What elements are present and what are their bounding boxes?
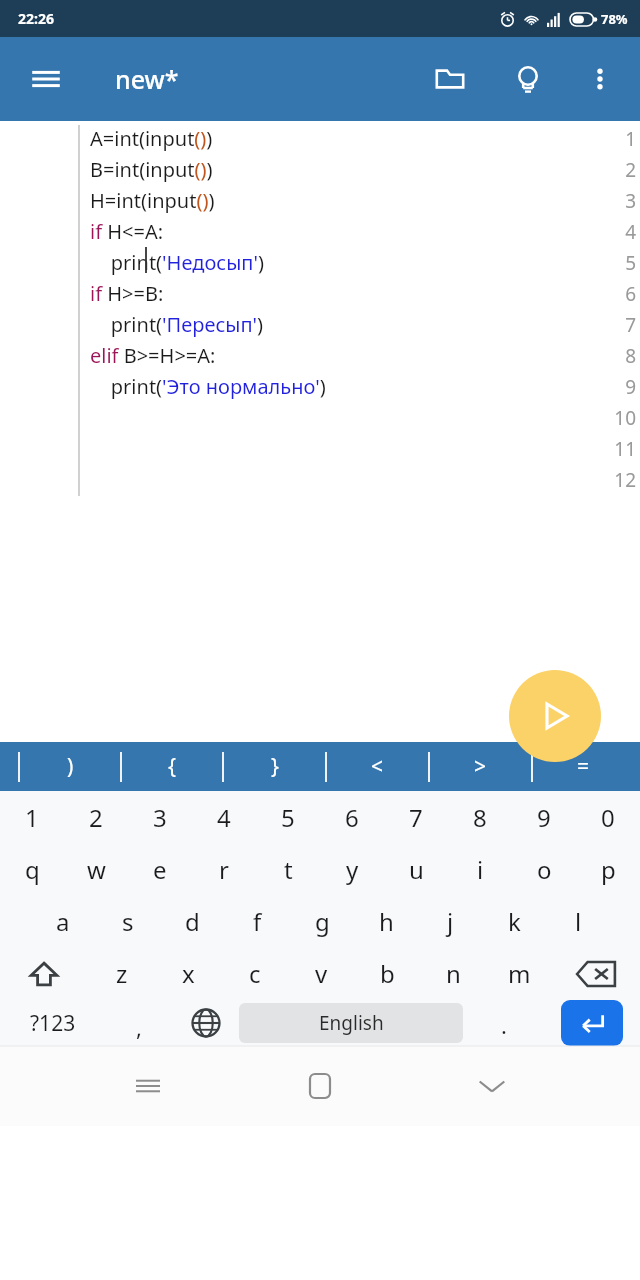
button[interactable]: 3 xyxy=(128,791,192,843)
button[interactable]: More options xyxy=(574,53,626,105)
staticText: k xyxy=(508,905,521,938)
staticText: . xyxy=(501,1010,507,1040)
staticText: b xyxy=(380,957,395,990)
staticText: elif B>=H>=A: xyxy=(90,342,216,369)
button[interactable]: 9 xyxy=(512,791,576,843)
staticText: ) xyxy=(67,752,74,781)
staticText: n xyxy=(446,957,461,990)
staticText: 7 xyxy=(409,801,423,834)
button[interactable]: > xyxy=(430,742,531,791)
button[interactable]: Shift xyxy=(0,947,88,1000)
button[interactable]: q xyxy=(0,843,64,895)
button[interactable]: 0 xyxy=(576,791,640,843)
button[interactable]: English xyxy=(239,1003,463,1043)
staticText: print('Пересып') xyxy=(90,311,264,338)
button[interactable]: { xyxy=(122,742,222,791)
staticText: print('Недосып') xyxy=(90,249,264,276)
staticText: t xyxy=(284,853,293,886)
button[interactable]: 1 xyxy=(0,121,640,742)
button[interactable]: h xyxy=(354,895,418,947)
button[interactable]: 4 xyxy=(192,791,256,843)
staticText: < xyxy=(371,752,384,781)
button[interactable]: e xyxy=(128,843,192,895)
button[interactable]: x xyxy=(155,947,222,1000)
staticText: l xyxy=(575,905,582,938)
staticText: q xyxy=(25,853,40,886)
button[interactable]: f xyxy=(225,895,290,947)
button[interactable]: y xyxy=(320,843,384,895)
button[interactable]: r xyxy=(192,843,256,895)
button[interactable]: n xyxy=(420,947,486,1000)
button[interactable]: Open file xyxy=(422,51,478,107)
button[interactable]: 5 xyxy=(256,791,320,843)
button[interactable]: u xyxy=(384,843,448,895)
button[interactable]: o xyxy=(512,843,576,895)
button[interactable]: b xyxy=(354,947,420,1000)
button[interactable]: Enter xyxy=(561,1000,623,1046)
staticText: 7 xyxy=(568,312,636,338)
button[interactable]: s xyxy=(95,895,160,947)
button[interactable]: 2 xyxy=(64,791,128,843)
staticText: 5 xyxy=(281,801,295,834)
staticText: u xyxy=(409,853,424,886)
button[interactable]: Run xyxy=(509,670,601,762)
button[interactable]: t xyxy=(256,843,320,895)
button[interactable]: z xyxy=(88,947,155,1000)
button[interactable]: , xyxy=(105,1000,173,1046)
button[interactable]: . xyxy=(463,1000,544,1046)
button[interactable]: 1 xyxy=(0,791,64,843)
staticText: 3 xyxy=(153,801,167,834)
button[interactable]: d xyxy=(160,895,225,947)
staticText: 2 xyxy=(568,157,636,183)
button[interactable]: a xyxy=(30,895,95,947)
staticText: o xyxy=(537,853,552,886)
staticText: x xyxy=(182,957,195,990)
button[interactable]: 6 xyxy=(320,791,384,843)
button[interactable]: < xyxy=(327,742,428,791)
button[interactable]: Backspace xyxy=(552,947,640,1000)
staticText: 6 xyxy=(345,801,359,834)
button[interactable]: Home xyxy=(292,1058,348,1114)
staticText: if H<=A: xyxy=(90,218,164,245)
button[interactable]: 7 xyxy=(384,791,448,843)
staticText: c xyxy=(249,957,261,990)
button[interactable]: m xyxy=(486,947,552,1000)
button[interactable]: w xyxy=(64,843,128,895)
button[interactable]: = xyxy=(533,742,634,791)
button[interactable]: c xyxy=(222,947,288,1000)
staticText: 4 xyxy=(217,801,231,834)
staticText: m xyxy=(508,957,531,990)
button[interactable]: ) xyxy=(20,742,120,791)
button[interactable]: p xyxy=(576,843,640,895)
staticText: 5 xyxy=(568,250,636,276)
button[interactable]: ?123 xyxy=(0,1000,105,1046)
staticText: 6 xyxy=(568,281,636,307)
staticText: new* xyxy=(115,62,179,96)
button[interactable]: Recents xyxy=(120,1058,176,1114)
button[interactable]: Change language xyxy=(173,1000,239,1046)
staticText: 8 xyxy=(568,343,636,369)
staticText: 3 xyxy=(568,188,636,214)
staticText: 78% xyxy=(601,10,628,28)
button[interactable]: g xyxy=(290,895,354,947)
staticText: y xyxy=(346,853,359,886)
button[interactable]: v xyxy=(288,947,354,1000)
button[interactable]: i xyxy=(448,843,512,895)
staticText: v xyxy=(315,957,328,990)
staticText: p xyxy=(601,853,616,886)
button[interactable]: Menu xyxy=(20,53,72,105)
button[interactable]: Hide keyboard xyxy=(464,1058,520,1114)
button[interactable]: } xyxy=(224,742,325,791)
staticText: i xyxy=(477,853,484,886)
staticText: z xyxy=(116,957,128,990)
button[interactable]: l xyxy=(546,895,610,947)
button[interactable]: j xyxy=(418,895,482,947)
button[interactable]: Hint xyxy=(500,51,556,107)
staticText: 4 xyxy=(568,219,636,245)
staticText: ?123 xyxy=(30,1009,76,1038)
button[interactable]: k xyxy=(482,895,546,947)
button[interactable]: 8 xyxy=(448,791,512,843)
staticText: a xyxy=(56,905,70,938)
staticText: h xyxy=(379,905,394,938)
staticText: d xyxy=(185,905,200,938)
